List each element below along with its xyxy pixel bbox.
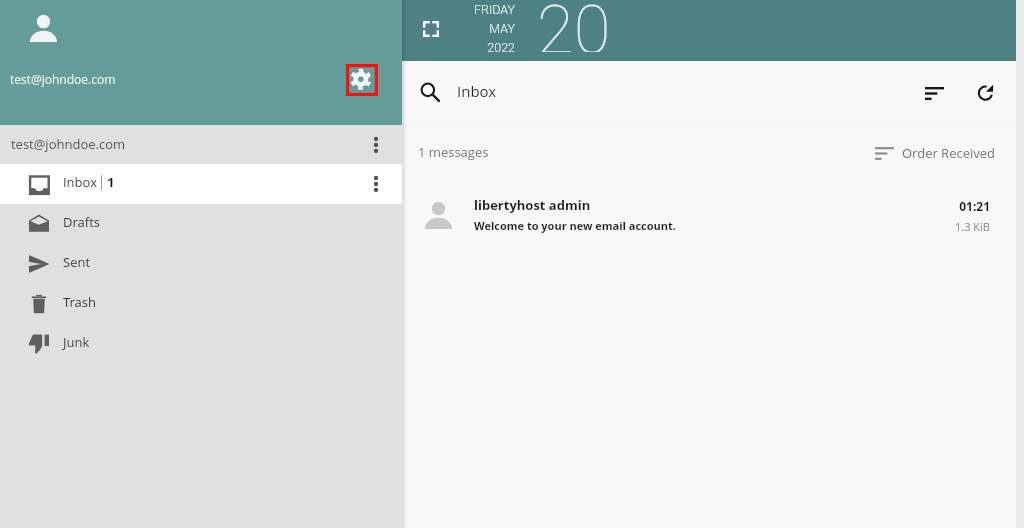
button[interactable]: Sent — [0, 244, 402, 284]
button[interactable]: Account options — [356, 125, 395, 164]
button[interactable]: Settings — [346, 64, 378, 96]
button[interactable]: Order Received — [866, 135, 1010, 171]
button[interactable]: Refresh — [965, 71, 1007, 113]
staticText: Welcome to your new email account. — [474, 218, 676, 233]
staticText: Inbox — [63, 173, 97, 191]
staticText: 01:21 — [890, 198, 990, 214]
staticText: test@johndoe.com — [11, 135, 126, 153]
staticText: Drafts — [63, 213, 100, 231]
staticText: 1 messages — [418, 143, 489, 161]
staticText: Inbox — [457, 81, 497, 101]
button[interactable]: Junk — [0, 324, 402, 364]
staticText: Sent — [63, 253, 90, 271]
staticText: 20 — [537, 0, 611, 52]
staticText: Trash — [63, 293, 97, 311]
staticText: MAY — [489, 21, 515, 36]
button[interactable]: Trash — [0, 284, 402, 324]
staticText: 1.3 KiB — [890, 219, 990, 234]
button[interactable]: Inbox — [0, 164, 402, 204]
button[interactable]: test@johndoe.com — [0, 125, 402, 164]
staticText: FRIDAY — [473, 2, 515, 17]
button[interactable]: Search — [412, 74, 449, 111]
staticText: 1 — [107, 173, 115, 191]
staticText: Junk — [63, 333, 90, 351]
staticText: Order Received — [902, 144, 995, 162]
button[interactable]: Sort — [913, 72, 955, 114]
staticText: libertyhost admin — [474, 196, 591, 214]
button[interactable]: Drafts — [0, 204, 402, 244]
staticText: 2022 — [487, 40, 515, 55]
button[interactable]: Folder options — [356, 164, 396, 204]
button[interactable]: libertyhost admin — [0, 184, 1024, 246]
button[interactable]: Fullscreen — [423, 21, 439, 37]
staticText: test@johndoe.com — [10, 71, 116, 87]
